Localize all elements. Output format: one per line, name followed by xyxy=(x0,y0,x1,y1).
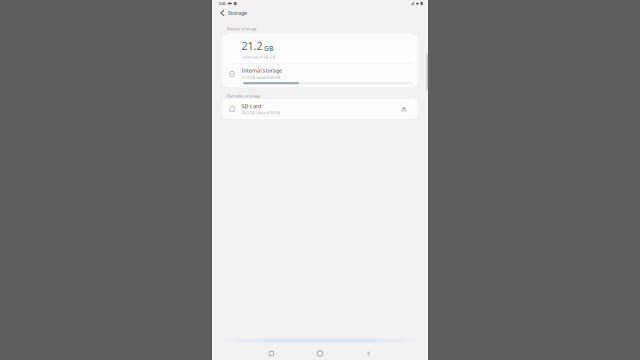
staticText: SD card xyxy=(241,103,261,110)
staticText: 3:45 xyxy=(218,1,225,6)
staticText: 21.2 GB used of 64 GB xyxy=(241,74,280,80)
staticText: Portable storage xyxy=(227,93,260,98)
staticText: Used out of 64 GB xyxy=(241,54,276,59)
staticText: Internal storage xyxy=(241,67,282,74)
staticText: Device storage xyxy=(227,26,257,31)
button[interactable]: Home xyxy=(296,348,344,358)
button[interactable]: Recent apps xyxy=(247,348,296,358)
button[interactable]: Back xyxy=(344,348,393,358)
staticText: 21.2 xyxy=(241,39,262,53)
button[interactable]: Back xyxy=(217,6,227,19)
button[interactable]: Internal storage xyxy=(222,67,418,84)
staticText: Storage xyxy=(228,9,247,17)
button[interactable]: SD card xyxy=(222,99,418,119)
staticText: GB xyxy=(264,44,273,53)
staticText: 20.3 GB used of 59 GB xyxy=(241,110,280,115)
